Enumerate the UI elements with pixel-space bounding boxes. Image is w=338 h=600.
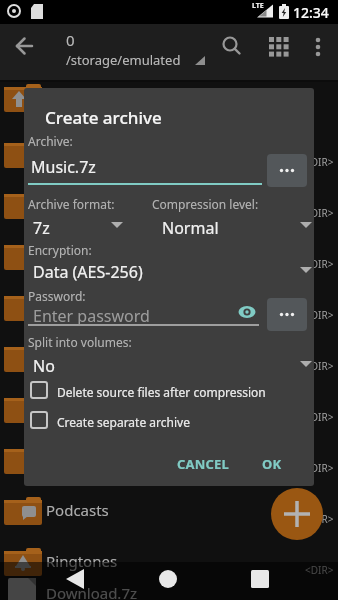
staticText: Split into volumes: [28, 334, 132, 350]
button[interactable] [28, 253, 314, 279]
staticText: Data (AES-256) [33, 261, 143, 283]
staticText: Archive format: [28, 196, 115, 212]
staticText: 7z [33, 217, 50, 239]
staticText: Create archive [45, 106, 162, 129]
staticText: <DIR> [305, 512, 334, 526]
button[interactable] [150, 564, 188, 598]
staticText: 12:34 [293, 3, 329, 22]
button[interactable] [271, 488, 323, 540]
staticText: <DIR> [305, 359, 334, 373]
button[interactable] [263, 30, 293, 60]
button[interactable] [242, 564, 280, 598]
button[interactable] [28, 346, 314, 372]
staticText: LTE [252, 1, 264, 11]
staticText: OK [262, 455, 282, 473]
staticText: Ringtones [46, 551, 118, 571]
staticText: CANCEL [177, 455, 230, 473]
staticText: Normal [162, 217, 219, 239]
staticText: Encryption: [28, 242, 92, 258]
staticText: <DIR> [305, 206, 334, 220]
staticText: <DIR> [305, 155, 334, 169]
button[interactable] [216, 30, 246, 60]
button[interactable] [28, 208, 158, 234]
staticText: Password: [28, 288, 86, 304]
staticText: Compression level: [152, 196, 259, 212]
staticText: Enter password [33, 305, 150, 327]
button[interactable]: OK [252, 443, 296, 481]
staticText: No [33, 355, 55, 377]
staticText: Create separate archive [57, 414, 190, 430]
staticText: <DIR> [305, 410, 334, 424]
staticText: Music.7z [31, 156, 96, 178]
staticText: <DIR> [305, 257, 334, 271]
button[interactable] [304, 30, 332, 60]
staticText: 0 [66, 30, 75, 50]
button[interactable] [28, 408, 310, 434]
button[interactable] [267, 154, 307, 187]
staticText: Delete source files after compression [57, 384, 266, 400]
button[interactable] [230, 300, 264, 326]
staticText: <DIR> [305, 563, 334, 577]
staticText: Podcasts [46, 500, 109, 520]
staticText: <DIR> [305, 308, 334, 322]
button[interactable] [56, 564, 94, 598]
staticText: Download.7z [46, 583, 138, 600]
button[interactable] [28, 378, 310, 404]
button[interactable] [0, 539, 338, 590]
button[interactable] [158, 208, 314, 234]
button[interactable] [0, 488, 338, 539]
staticText: /storage/emulated [66, 51, 181, 69]
button[interactable] [267, 298, 307, 331]
button[interactable] [8, 34, 40, 58]
staticText: Archive: [28, 133, 73, 149]
button[interactable]: CANCEL [167, 443, 239, 481]
staticText: <DIR> [305, 461, 334, 475]
